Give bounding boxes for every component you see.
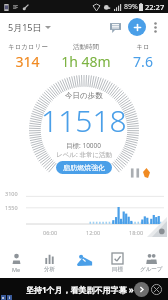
staticText: i	[9, 295, 11, 300]
staticText: x	[2, 295, 5, 300]
staticText: レベル: 非常に活動	[56, 150, 113, 159]
button[interactable]: キロカロリー	[0, 43, 55, 71]
button[interactable]: Me	[0, 248, 33, 278]
button[interactable]: Pause	[124, 162, 146, 184]
button[interactable]: More options	[146, 18, 164, 36]
button[interactable]: Add	[128, 18, 146, 36]
button[interactable]: 脂肪燃焼強化	[56, 161, 112, 174]
button[interactable]: Close ad	[151, 284, 162, 295]
button[interactable]: 5月15日	[8, 21, 51, 33]
staticText: 12:00	[86, 229, 101, 236]
staticText: 3100	[5, 190, 18, 197]
staticText: 今日の歩数	[65, 91, 103, 100]
staticText: 1550	[5, 204, 18, 211]
staticText: 89%	[124, 2, 138, 12]
staticText: 活動時間	[73, 43, 99, 51]
staticText: IF	[13, 3, 19, 11]
button[interactable]: 分析	[33, 248, 66, 278]
button[interactable]: Activity	[70, 246, 98, 274]
staticText: 脂肪燃焼強化	[63, 163, 105, 172]
staticText: 11518	[41, 100, 127, 141]
button[interactable]: 3100	[0, 186, 168, 238]
staticText: 7.6	[133, 52, 153, 71]
staticText: グループ	[140, 266, 163, 273]
button[interactable]: 目標	[100, 248, 134, 278]
staticText: 18:00	[129, 229, 144, 236]
button[interactable]: 活動時間	[55, 43, 117, 71]
button[interactable]: Open ad	[134, 282, 149, 297]
button[interactable]: グループ	[134, 248, 168, 278]
staticText: 目標: 10000	[66, 141, 102, 150]
staticText: 坚持1个月，看美剧不用字幕 »	[26, 284, 134, 295]
staticText: キロカロリー	[8, 43, 48, 51]
staticText: 1h 48m	[61, 52, 111, 71]
staticText: Me	[12, 266, 21, 273]
staticText: 5月15日	[8, 21, 42, 33]
staticText: 314	[15, 52, 40, 71]
staticText: 分析	[44, 266, 55, 273]
button[interactable]: Messages	[105, 17, 125, 37]
button[interactable]: 坚持1个月，看美剧不用字幕 »	[0, 278, 168, 300]
staticText: 06:00	[43, 229, 58, 236]
button[interactable]: 今日の歩数	[0, 74, 168, 186]
staticText: 目標	[112, 266, 123, 273]
button[interactable]: Map	[147, 217, 167, 237]
button[interactable]: キロ	[117, 43, 168, 71]
staticText: 22:27	[145, 2, 165, 12]
staticText: キロ	[136, 43, 150, 51]
